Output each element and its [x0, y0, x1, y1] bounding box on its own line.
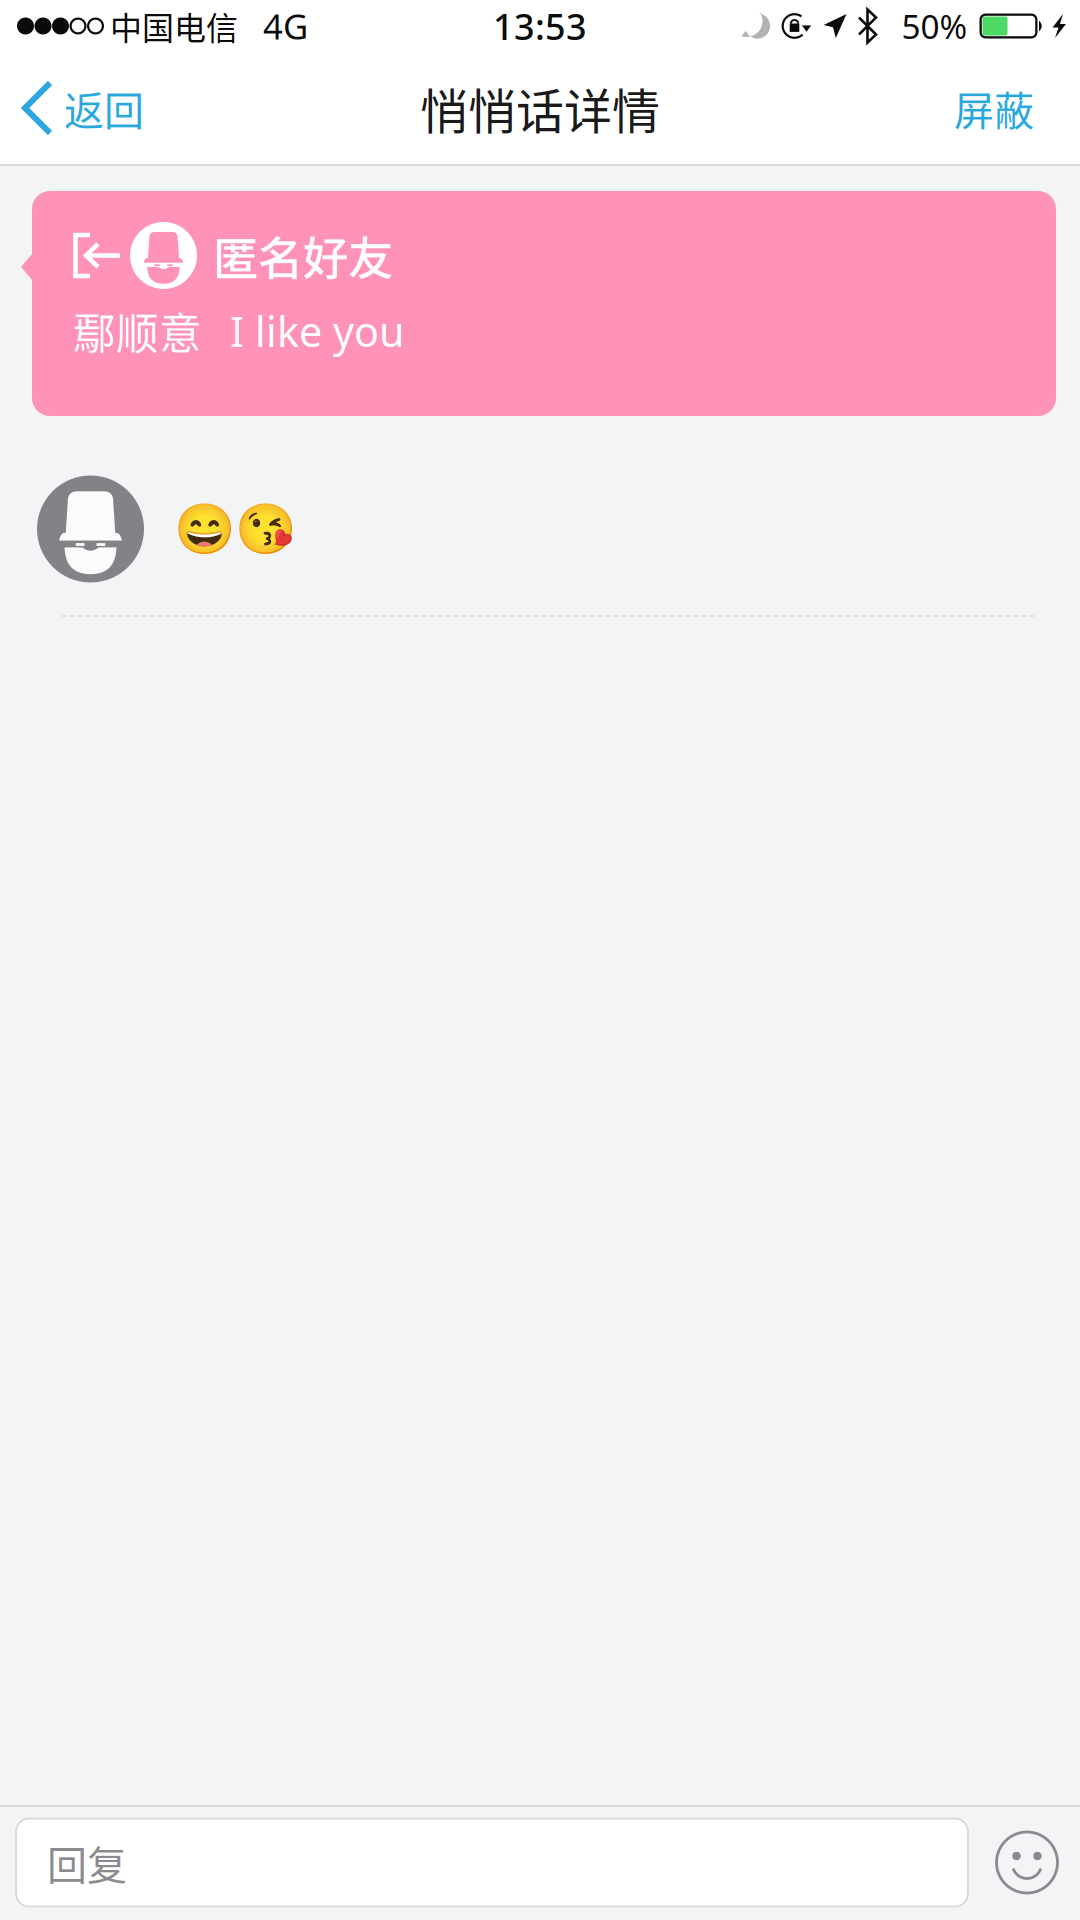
staticText: 中国电信: [110, 3, 238, 49]
button[interactable]: 回复: [15, 1817, 969, 1907]
button[interactable]: 返回: [0, 52, 160, 164]
staticText: I like you: [230, 303, 405, 358]
staticText: 50%: [901, 4, 967, 48]
button[interactable]: 屏蔽: [934, 52, 1080, 164]
staticText: 鄢顺意: [73, 300, 202, 362]
staticText: 返回: [64, 79, 144, 137]
staticText: 😄😘: [174, 500, 296, 558]
staticText: 回复: [47, 1833, 127, 1891]
button[interactable]: Emoji keyboard: [969, 1811, 1080, 1913]
staticText: 4G: [263, 3, 308, 49]
staticText: 13:53: [493, 2, 587, 50]
staticText: 匿名好友: [213, 223, 393, 288]
staticText: 屏蔽: [954, 79, 1034, 137]
staticText: 悄悄话详情: [420, 73, 660, 143]
